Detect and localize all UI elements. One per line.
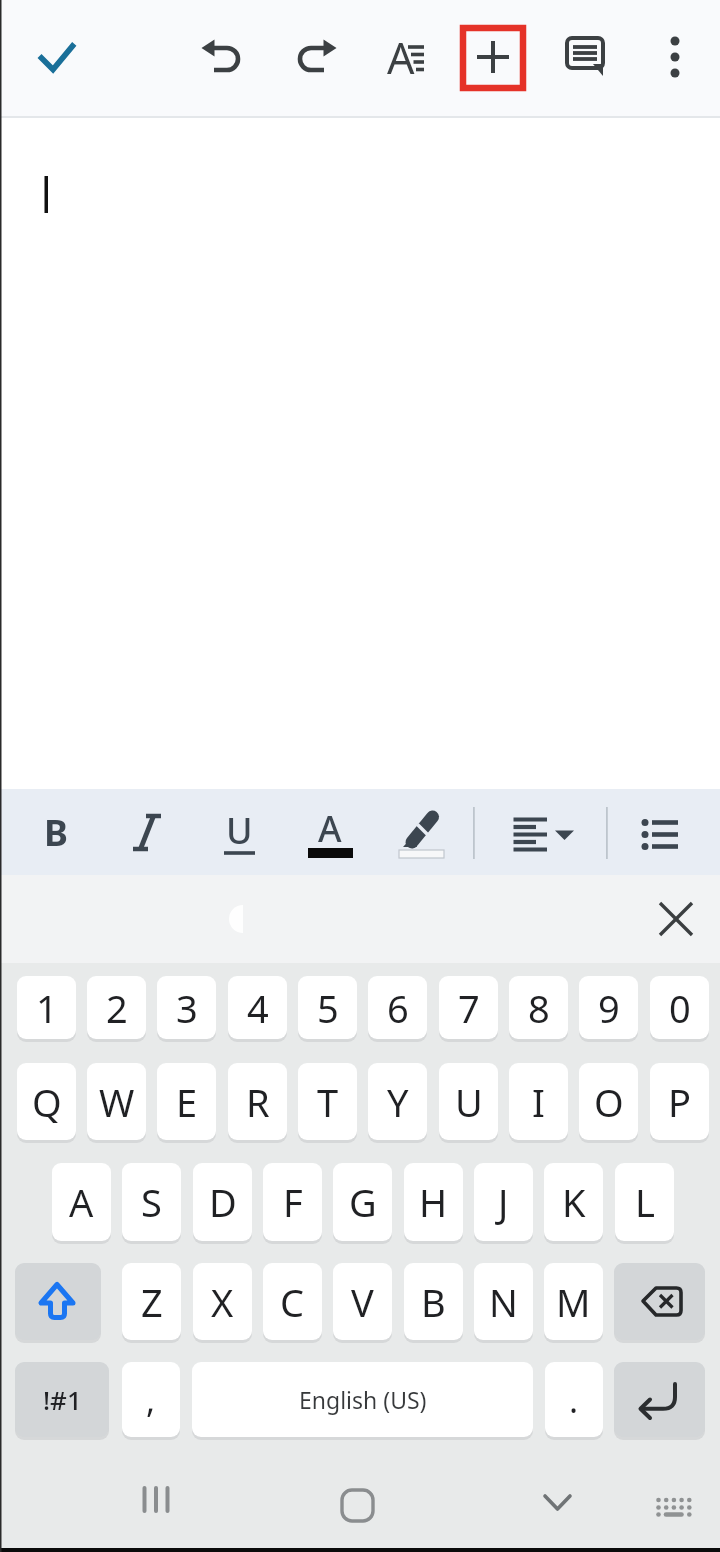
button[interactable]: P	[650, 1063, 709, 1140]
staticText: !#1	[43, 1382, 82, 1417]
button[interactable]	[285, 29, 341, 85]
staticText: 3	[176, 982, 198, 1034]
staticText: 6	[387, 982, 409, 1034]
button[interactable]: E	[157, 1063, 216, 1140]
staticText: 8	[528, 982, 550, 1034]
button[interactable]: 8	[509, 976, 568, 1039]
staticText: ,	[146, 1377, 156, 1423]
button[interactable]: Q	[17, 1063, 76, 1140]
button[interactable]	[505, 806, 581, 858]
button[interactable]: K	[544, 1163, 603, 1241]
staticText: H	[419, 1176, 448, 1228]
button[interactable]: G	[333, 1163, 392, 1241]
button[interactable]: !#1	[15, 1362, 109, 1437]
button[interactable]	[29, 29, 85, 85]
staticText: I	[532, 1076, 545, 1128]
button[interactable]: V	[333, 1263, 392, 1340]
button[interactable]	[557, 29, 613, 85]
button[interactable]	[650, 893, 702, 945]
button[interactable]: 0	[650, 976, 709, 1039]
button[interactable]: J	[474, 1163, 533, 1241]
button[interactable]: W	[87, 1063, 146, 1140]
staticText: 7	[458, 982, 480, 1034]
button[interactable]	[399, 806, 447, 858]
button[interactable]: I	[509, 1063, 568, 1140]
staticText: O	[594, 1076, 624, 1128]
button[interactable]: A	[306, 802, 354, 854]
button[interactable]: A	[52, 1163, 111, 1241]
staticText: A	[387, 28, 415, 84]
button[interactable]: R	[228, 1063, 287, 1140]
button[interactable]: 1	[17, 976, 76, 1039]
staticText: Q	[32, 1076, 62, 1128]
button[interactable]	[15, 1263, 101, 1340]
staticText: B	[421, 1276, 446, 1328]
button[interactable]: Y	[368, 1063, 427, 1140]
button[interactable]	[330, 1480, 386, 1524]
staticText: D	[209, 1176, 237, 1228]
staticText: C	[280, 1276, 305, 1328]
staticText: F	[283, 1176, 303, 1228]
staticText: P	[668, 1076, 691, 1128]
button[interactable]	[652, 1480, 698, 1524]
staticText: V	[351, 1276, 374, 1328]
button[interactable]: 7	[439, 976, 498, 1039]
staticText: A	[318, 804, 342, 853]
button[interactable]	[614, 1263, 705, 1340]
staticText: L	[635, 1176, 655, 1228]
button[interactable]	[197, 29, 253, 85]
button[interactable]: Z	[122, 1263, 181, 1340]
staticText: 2	[106, 982, 128, 1034]
staticText: B	[44, 808, 68, 857]
button[interactable]: T	[298, 1063, 357, 1140]
button[interactable]	[532, 1480, 584, 1524]
staticText: A	[69, 1176, 94, 1228]
staticText: Z	[141, 1276, 163, 1328]
staticText: 5	[317, 982, 339, 1034]
button[interactable]	[125, 1480, 185, 1524]
button[interactable]	[465, 29, 521, 85]
button[interactable]: English (US)	[192, 1362, 533, 1437]
button[interactable]: H	[404, 1163, 463, 1241]
staticText: 9	[598, 982, 620, 1034]
staticText: U	[455, 1076, 483, 1128]
button[interactable]	[638, 806, 694, 858]
button[interactable]: U	[439, 1063, 498, 1140]
button[interactable]: F	[263, 1163, 322, 1241]
button[interactable]: 3	[157, 976, 216, 1039]
button[interactable]: C	[263, 1263, 322, 1340]
button[interactable]: 9	[579, 976, 638, 1039]
staticText: R	[246, 1076, 270, 1128]
staticText: N	[489, 1276, 518, 1328]
button[interactable]: N	[474, 1263, 533, 1340]
staticText: 1	[36, 982, 58, 1034]
button[interactable]: S	[122, 1163, 181, 1241]
button[interactable]: D	[193, 1163, 252, 1241]
button[interactable]	[614, 1362, 705, 1437]
button[interactable]: M	[544, 1263, 603, 1340]
button[interactable]	[377, 29, 433, 85]
staticText: X	[211, 1276, 234, 1328]
button[interactable]: B	[32, 806, 80, 858]
staticText: K	[562, 1176, 586, 1228]
button[interactable]: L	[615, 1163, 674, 1241]
button[interactable]: 2	[87, 976, 146, 1039]
staticText: G	[349, 1176, 377, 1228]
button[interactable]: 5	[298, 976, 357, 1039]
staticText: Y	[387, 1076, 409, 1128]
button[interactable]: U	[215, 804, 263, 856]
staticText: W	[99, 1076, 135, 1128]
staticText: S	[141, 1176, 162, 1228]
button[interactable]: O	[579, 1063, 638, 1140]
staticText: 0	[669, 982, 691, 1034]
button[interactable]	[123, 806, 171, 858]
button[interactable]: 6	[368, 976, 427, 1039]
button[interactable]: .	[545, 1362, 603, 1437]
button[interactable]	[647, 29, 703, 85]
button[interactable]: X	[193, 1263, 252, 1340]
staticText: J	[498, 1176, 509, 1228]
button[interactable]: 4	[228, 976, 287, 1039]
button[interactable]: B	[404, 1263, 463, 1340]
button[interactable]: ,	[122, 1362, 180, 1437]
staticText: English (US)	[299, 1384, 427, 1415]
